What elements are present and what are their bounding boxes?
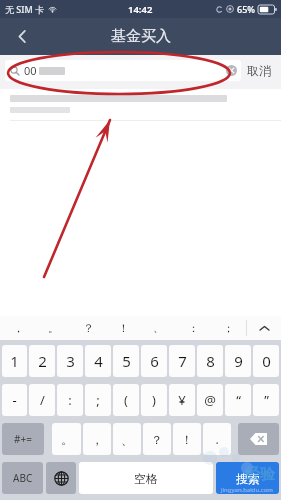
button[interactable]: ？: [71, 316, 106, 340]
staticText: (: [124, 391, 128, 409]
button[interactable]: 2: [29, 345, 55, 377]
staticText: .: [215, 431, 219, 447]
button[interactable]: 8: [197, 345, 223, 377]
button[interactable]: ): [141, 384, 167, 416]
button[interactable]: ：: [176, 316, 211, 340]
button[interactable]: [0, 89, 281, 120]
staticText: 、: [121, 432, 133, 447]
staticText: ：: [188, 321, 199, 335]
button[interactable]: 搜索: [216, 462, 279, 494]
staticText: 基金买入: [111, 27, 171, 46]
button[interactable]: 3: [57, 345, 83, 377]
button[interactable]: 删除: [238, 423, 279, 455]
button[interactable]: “: [225, 384, 251, 416]
button[interactable]: (: [113, 384, 139, 416]
button[interactable]: :: [57, 384, 83, 416]
staticText: 4: [94, 351, 103, 371]
staticText: 2: [38, 351, 47, 371]
staticText: 5: [122, 351, 131, 371]
button[interactable]: ，: [83, 423, 111, 455]
staticText: 经验: [245, 465, 275, 484]
staticText: 6: [150, 351, 159, 371]
button[interactable]: 返回: [0, 18, 44, 55]
staticText: ？: [151, 432, 163, 447]
button[interactable]: 、: [113, 423, 141, 455]
button[interactable]: ，: [0, 316, 36, 340]
staticText: :: [68, 391, 72, 409]
staticText: ;: [96, 391, 100, 409]
staticText: 无 SIM 卡: [5, 3, 45, 15]
button[interactable]: 6: [141, 345, 167, 377]
button[interactable]: /: [29, 384, 55, 416]
button[interactable]: 空格: [79, 462, 213, 494]
button[interactable]: 切换输入法: [46, 462, 76, 494]
button[interactable]: ！: [106, 316, 141, 340]
button[interactable]: 。: [36, 316, 71, 340]
staticText: ！: [118, 321, 129, 335]
button[interactable]: @: [197, 384, 223, 416]
button[interactable]: 收起键盘: [247, 316, 281, 340]
staticText: ”: [264, 391, 269, 409]
button[interactable]: 1: [2, 345, 27, 377]
staticText: 空格: [134, 471, 158, 486]
staticText: 0: [262, 351, 271, 371]
button[interactable]: #+=: [2, 423, 44, 455]
staticText: 取消: [247, 63, 271, 78]
staticText: 搜索: [236, 471, 260, 486]
staticText: ¥: [178, 391, 186, 409]
staticText: 8: [206, 351, 215, 371]
button[interactable]: ;: [85, 384, 111, 416]
button[interactable]: 00: [5, 60, 241, 81]
staticText: -: [12, 391, 17, 409]
button[interactable]: ABC: [2, 462, 43, 494]
button[interactable]: 清除: [226, 65, 237, 76]
button[interactable]: ？: [143, 423, 171, 455]
staticText: 。: [61, 432, 73, 447]
button[interactable]: 取消: [241, 55, 277, 85]
staticText: 1: [10, 351, 19, 371]
staticText: /: [40, 391, 45, 409]
button[interactable]: -: [2, 384, 27, 416]
button[interactable]: 9: [225, 345, 251, 377]
button[interactable]: .: [203, 423, 231, 455]
staticText: 9: [234, 351, 243, 371]
staticText: ，: [13, 321, 24, 335]
button[interactable]: 。: [52, 423, 81, 455]
staticText: 。: [48, 321, 59, 335]
staticText: ；: [223, 321, 234, 335]
staticText: #+=: [14, 432, 32, 446]
button[interactable]: 0: [253, 345, 279, 377]
button[interactable]: 4: [85, 345, 111, 377]
button[interactable]: ¥: [169, 384, 195, 416]
staticText: jingyan.baidu.com: [221, 486, 273, 494]
button[interactable]: 7: [169, 345, 195, 377]
staticText: 00: [24, 63, 37, 78]
staticText: 3: [66, 351, 75, 371]
button[interactable]: ；: [211, 316, 246, 340]
staticText: @: [204, 391, 216, 409]
staticText: 14:42: [128, 3, 153, 16]
button[interactable]: ”: [253, 384, 279, 416]
button[interactable]: 5: [113, 345, 139, 377]
staticText: 7: [178, 351, 187, 371]
staticText: “: [236, 391, 241, 409]
staticText: 65%: [237, 3, 255, 15]
staticText: ！: [181, 432, 193, 447]
staticText: ，: [91, 432, 103, 447]
button[interactable]: ！: [173, 423, 201, 455]
staticText: ？: [83, 321, 94, 335]
button[interactable]: 、: [141, 316, 176, 340]
staticText: ABC: [13, 471, 33, 485]
staticText: 、: [153, 321, 164, 335]
staticText: ): [152, 391, 156, 409]
